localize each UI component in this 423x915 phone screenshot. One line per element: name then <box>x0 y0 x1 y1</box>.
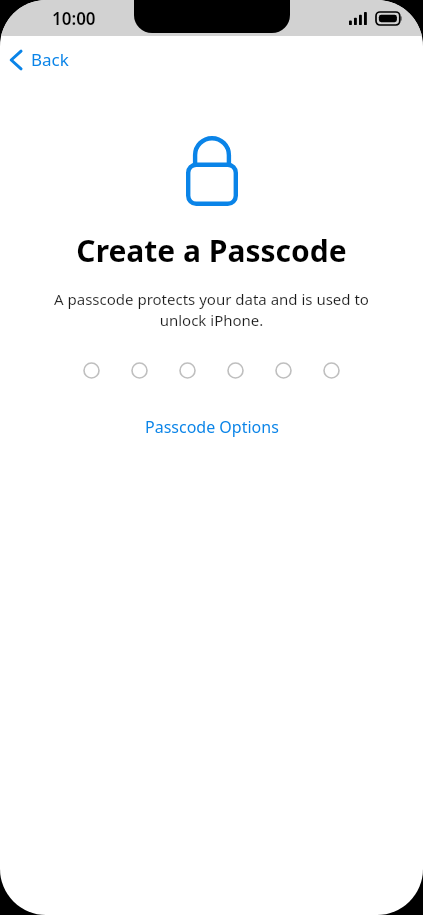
staticText: Create a Passcode <box>76 230 347 271</box>
staticText: Back <box>31 48 69 71</box>
button[interactable]: Back <box>0 42 83 77</box>
staticText: Passcode Options <box>145 416 279 438</box>
staticText: A passcode protects your data and is use… <box>44 289 379 331</box>
staticText: 10:00 <box>52 7 96 30</box>
button[interactable]: Passcode Options <box>129 410 295 444</box>
